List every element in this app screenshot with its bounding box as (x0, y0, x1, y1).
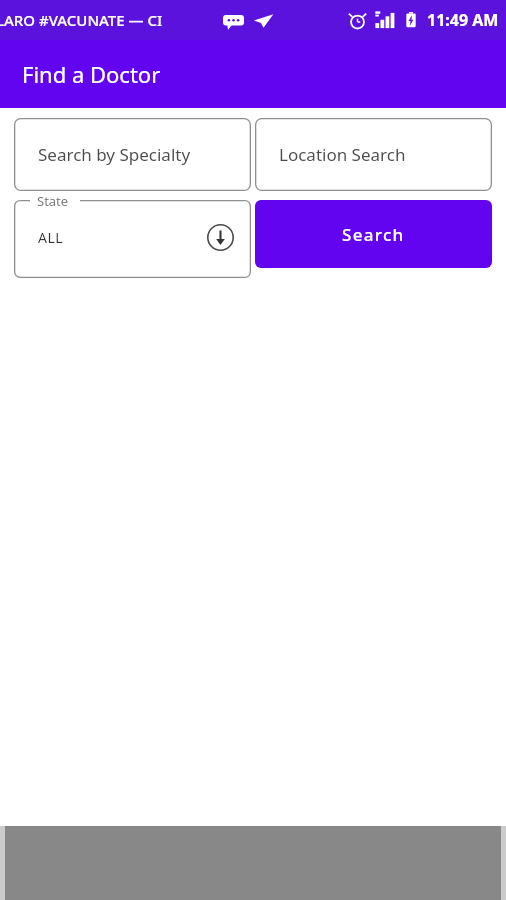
button[interactable]: Search by Specialty (14, 118, 251, 191)
staticText: 11:49 AM (427, 9, 499, 31)
staticText: State (37, 192, 69, 210)
button[interactable]: Open state dropdown (204, 221, 236, 253)
staticText: Location Search (279, 143, 406, 166)
staticText: ALL (38, 228, 64, 247)
staticText: Search by Specialty (38, 143, 191, 166)
staticText: Find a Doctor (22, 59, 161, 89)
staticText: Search (342, 223, 405, 246)
button[interactable]: Location Search (255, 118, 492, 191)
button[interactable]: State (14, 200, 251, 278)
button[interactable]: Search (255, 200, 492, 268)
staticText: LARO #VACUNATE — CI (0, 10, 163, 30)
